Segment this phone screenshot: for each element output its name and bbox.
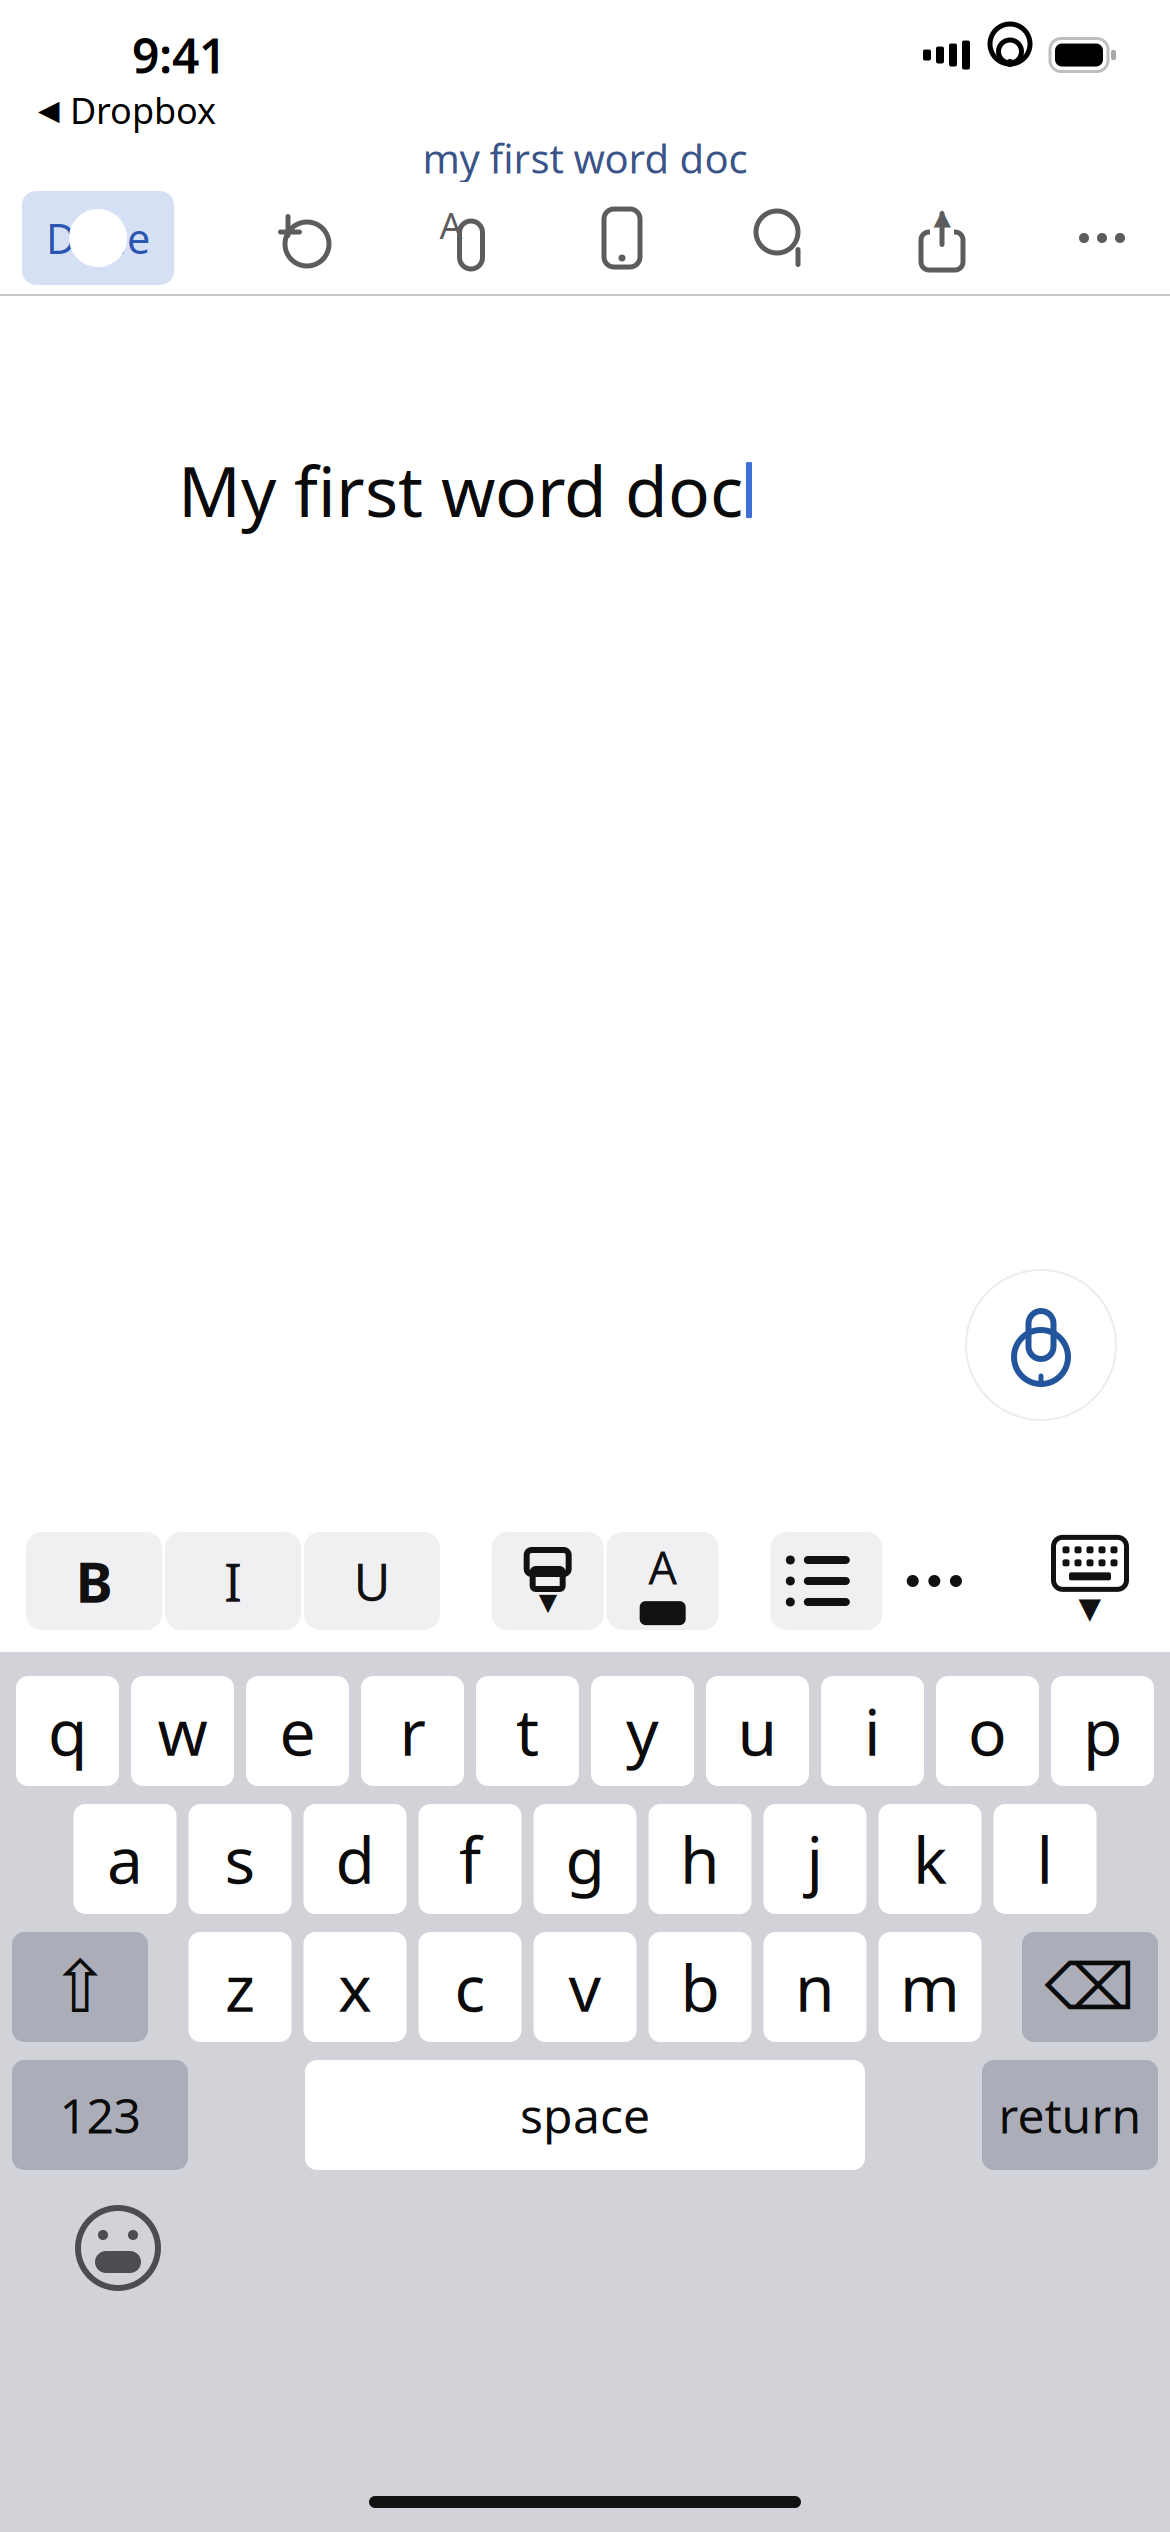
staticText: U: [353, 1547, 390, 1615]
button[interactable]: y: [591, 1676, 694, 1786]
button[interactable]: Undo: [270, 206, 334, 270]
staticText: l: [1036, 1816, 1053, 1901]
staticText: space: [520, 2083, 650, 2147]
staticText: h: [680, 1816, 720, 1901]
staticText: t: [516, 1688, 539, 1773]
button[interactable]: Markup: [430, 206, 494, 270]
staticText: i: [864, 1688, 881, 1773]
staticText: d: [335, 1816, 374, 1901]
staticText: c: [454, 1944, 485, 2029]
staticText: r: [399, 1688, 425, 1773]
staticText: ◀: [38, 94, 60, 126]
button[interactable]: r: [361, 1676, 464, 1786]
staticText: f: [459, 1816, 481, 1901]
button[interactable]: t: [476, 1676, 579, 1786]
button[interactable]: q: [16, 1676, 119, 1786]
staticText: my first word doc: [422, 131, 747, 184]
button[interactable]: m: [878, 1932, 981, 2042]
button[interactable]: More formatting: [882, 1532, 986, 1630]
button[interactable]: o: [936, 1676, 1039, 1786]
staticText: Dropbox: [70, 86, 216, 134]
staticText: m: [900, 1944, 960, 2029]
button[interactable]: Shift: [12, 1932, 148, 2042]
button[interactable]: U: [304, 1532, 440, 1630]
button[interactable]: space: [305, 2060, 865, 2170]
button[interactable]: a: [73, 1804, 176, 1914]
button[interactable]: u: [706, 1676, 809, 1786]
button[interactable]: h: [648, 1804, 751, 1914]
button[interactable]: Emoji: [62, 2192, 174, 2304]
button[interactable]: p: [1051, 1676, 1154, 1786]
staticText: A: [439, 201, 462, 249]
staticText: g: [565, 1816, 604, 1901]
staticText: u: [737, 1688, 777, 1773]
button[interactable]: f: [418, 1804, 521, 1914]
button[interactable]: Bulleted list: [770, 1532, 882, 1630]
button[interactable]: return: [982, 2060, 1158, 2170]
staticText: My first word doc: [178, 444, 743, 536]
button[interactable]: Done: [22, 191, 174, 285]
button[interactable]: d: [303, 1804, 406, 1914]
button[interactable]: c: [418, 1932, 521, 2042]
button[interactable]: n: [763, 1932, 866, 2042]
button[interactable]: Highlight: [492, 1532, 604, 1630]
staticText: x: [338, 1944, 372, 2029]
staticText: I: [224, 1546, 242, 1616]
staticText: B: [75, 1544, 112, 1618]
staticText: ⇧: [50, 1946, 110, 2028]
staticText: 9:41: [132, 23, 226, 87]
button[interactable]: More: [1070, 206, 1134, 270]
button[interactable]: g: [533, 1804, 636, 1914]
staticText: 123: [59, 2083, 140, 2147]
staticText: ▲: [933, 204, 950, 230]
staticText: w: [157, 1688, 207, 1773]
staticText: p: [1083, 1688, 1122, 1773]
button[interactable]: v: [533, 1932, 636, 2042]
staticText: k: [913, 1816, 947, 1901]
staticText: q: [48, 1688, 87, 1773]
button[interactable]: 123: [12, 2060, 188, 2170]
button[interactable]: s: [188, 1804, 291, 1914]
button[interactable]: ◀: [0, 86, 1170, 134]
button[interactable]: e: [246, 1676, 349, 1786]
staticText: ▼: [1078, 1591, 1101, 1625]
staticText: y: [626, 1688, 659, 1773]
staticText: j: [806, 1816, 823, 1901]
button[interactable]: I: [165, 1532, 301, 1630]
button[interactable]: b: [648, 1932, 751, 2042]
button[interactable]: Hide keyboard: [1038, 1532, 1142, 1630]
button[interactable]: l: [993, 1804, 1096, 1914]
staticText: b: [680, 1944, 719, 2029]
staticText: v: [568, 1944, 601, 2029]
staticText: a: [107, 1816, 143, 1901]
button[interactable]: Share: [910, 206, 974, 270]
button[interactable]: Search: [750, 206, 814, 270]
staticText: return: [998, 2083, 1141, 2147]
staticText: ▼: [539, 1588, 557, 1616]
button[interactable]: Mobile view: [590, 206, 654, 270]
staticText: o: [968, 1688, 1007, 1773]
button[interactable]: k: [878, 1804, 981, 1914]
staticText: z: [225, 1944, 255, 2029]
staticText: A: [648, 1537, 677, 1597]
button[interactable]: B: [26, 1532, 162, 1630]
staticText: ⌫: [1044, 1951, 1135, 2023]
staticText: e: [279, 1688, 315, 1773]
button[interactable]: i: [821, 1676, 924, 1786]
button[interactable]: Delete: [1022, 1932, 1158, 2042]
button[interactable]: Dictate: [960, 1264, 1122, 1426]
staticText: n: [795, 1944, 835, 2029]
staticText: Done: [46, 211, 150, 265]
button[interactable]: j: [763, 1804, 866, 1914]
button[interactable]: Font color: [607, 1532, 719, 1630]
button[interactable]: x: [303, 1932, 406, 2042]
staticText: s: [224, 1816, 255, 1901]
button[interactable]: w: [131, 1676, 234, 1786]
button[interactable]: z: [188, 1932, 291, 2042]
